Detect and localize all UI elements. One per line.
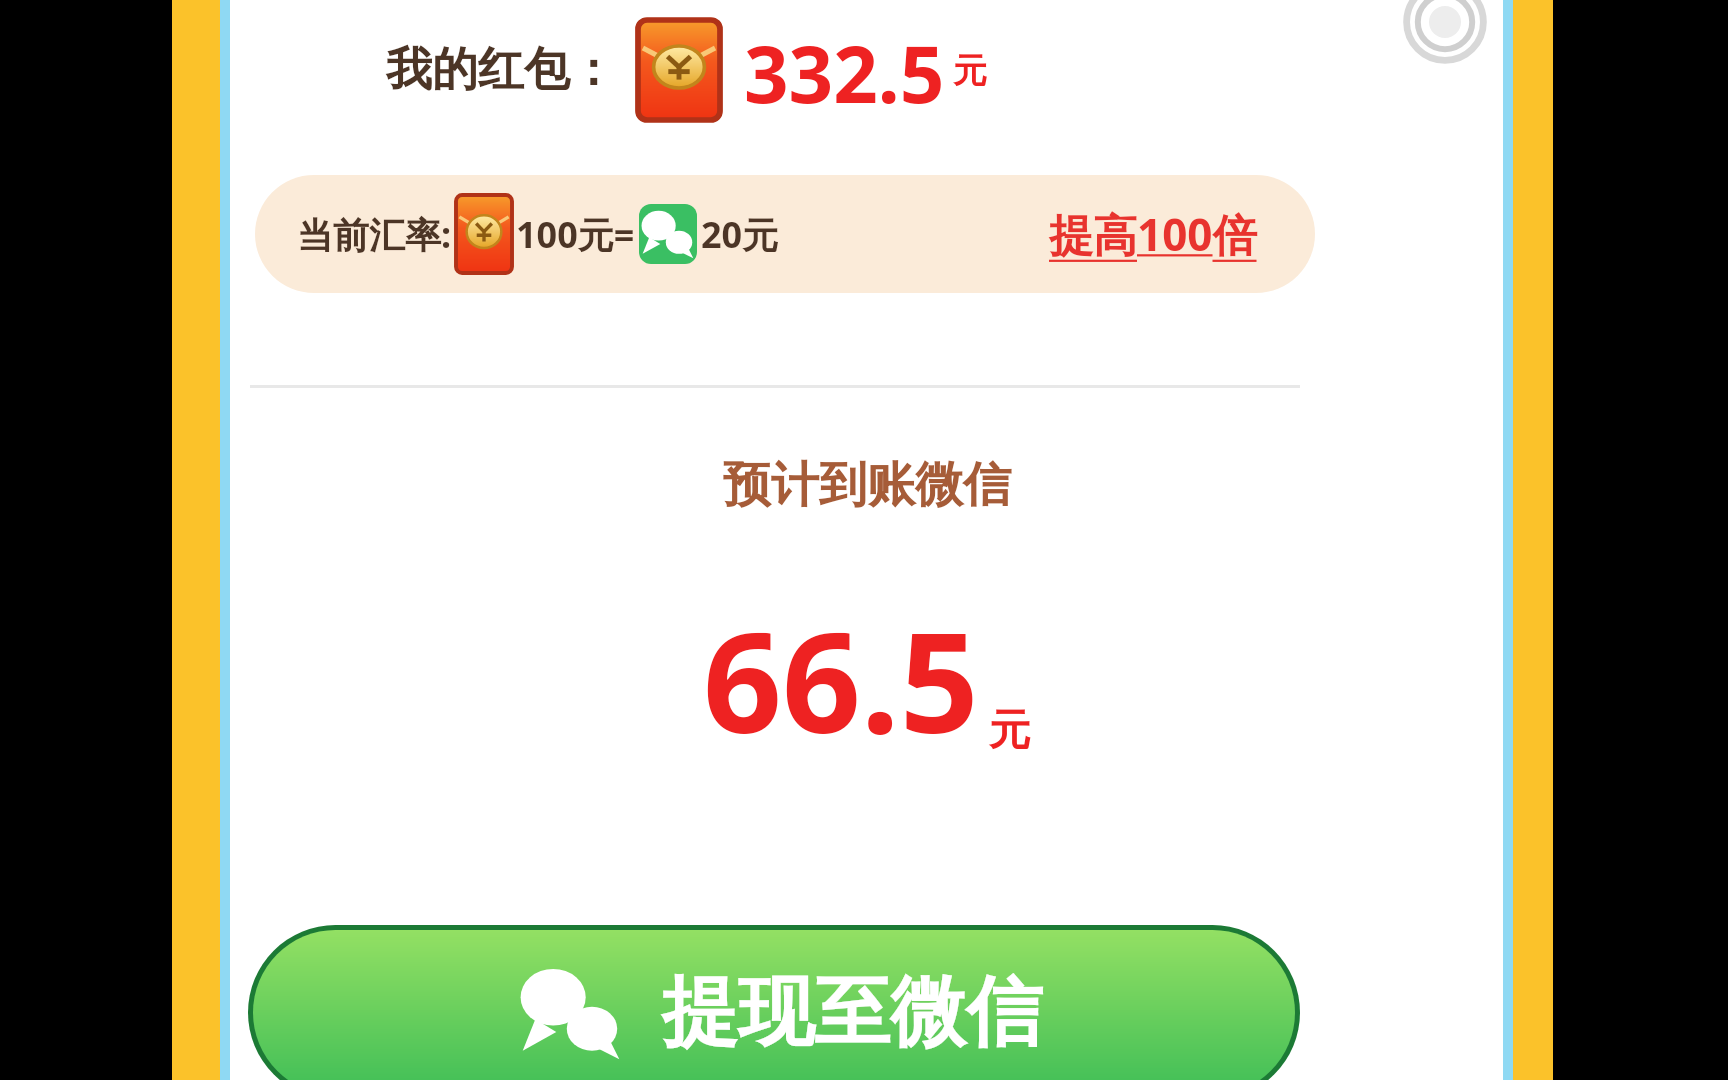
staticText: 当前汇率:: [297, 210, 452, 259]
button[interactable]: 当前汇率:: [255, 175, 1315, 293]
staticText: 100元=: [516, 210, 635, 259]
button[interactable]: 提高100倍: [1049, 204, 1257, 264]
staticText: 预计到账微信: [723, 455, 1011, 515]
staticText: 我的红包：: [386, 41, 616, 99]
button[interactable]: 提现至微信: [253, 930, 1295, 1080]
staticText: 20元: [701, 210, 779, 259]
staticText: 元: [953, 49, 987, 92]
button[interactable]: Record: [1405, 0, 1485, 62]
staticText: 332.5: [744, 20, 945, 120]
staticText: 提现至微信: [662, 965, 1042, 1061]
staticText: 元: [989, 704, 1031, 757]
staticText: 66.5: [703, 585, 979, 773]
